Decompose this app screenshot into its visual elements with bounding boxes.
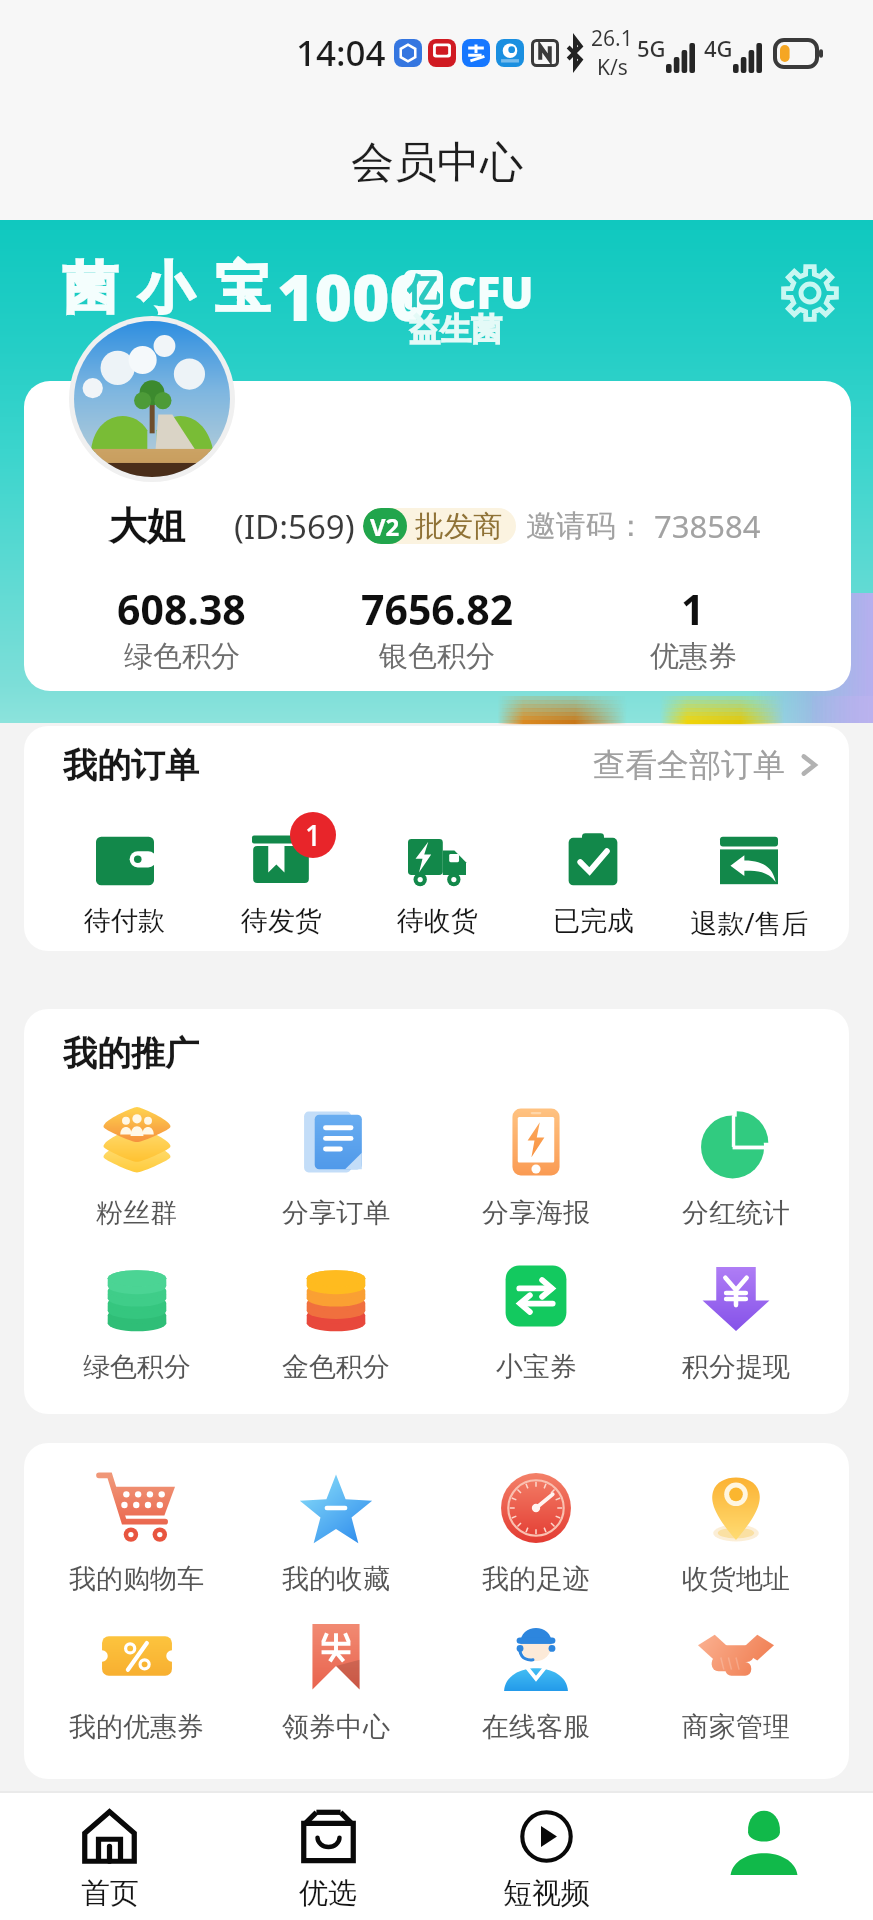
staticText: 领券中心: [282, 1710, 390, 1744]
staticText: 我的推广: [63, 1032, 199, 1075]
staticText: 在线客服: [482, 1710, 590, 1744]
staticText: 绿色积分: [124, 638, 240, 675]
button[interactable]: 我的: [655, 1793, 873, 1920]
staticText: CFU: [448, 262, 534, 322]
button[interactable]: 7656.82: [309, 581, 565, 675]
button[interactable]: 查看全部订单: [593, 741, 821, 789]
staticText: 益生菌: [409, 310, 502, 349]
staticText: 我的收藏: [282, 1562, 390, 1596]
staticText: 我的优惠券: [69, 1710, 204, 1744]
staticText: 商家管理: [682, 1710, 790, 1744]
button[interactable]: 收货地址: [636, 1470, 836, 1596]
button[interactable]: 1: [203, 832, 359, 938]
staticText: 优惠券: [650, 638, 737, 675]
staticText: 5G: [637, 33, 666, 63]
staticText: 金色积分: [282, 1350, 390, 1384]
button[interactable]: 1: [565, 581, 821, 675]
button[interactable]: 粉丝群: [37, 1104, 236, 1230]
staticText: (ID:569): [234, 504, 355, 549]
staticText: 我的购物车: [69, 1562, 204, 1596]
staticText: 待付款: [84, 904, 165, 938]
button[interactable]: 待收货: [359, 832, 515, 938]
staticText: 26.1: [591, 24, 633, 53]
staticText: 7656.82: [361, 581, 514, 637]
button[interactable]: 我的优惠券: [37, 1618, 236, 1744]
staticText: 608.38: [117, 581, 246, 637]
button[interactable]: 已完成: [515, 832, 671, 938]
button[interactable]: 分红统计: [636, 1104, 836, 1230]
button[interactable]: 待付款: [46, 832, 203, 938]
button[interactable]: 分享海报: [436, 1104, 636, 1230]
button[interactable]: 分享订单: [236, 1104, 436, 1230]
staticText: 1: [681, 581, 705, 637]
staticText: 分享订单: [282, 1196, 390, 1230]
button[interactable]: 我的足迹: [436, 1470, 636, 1596]
button[interactable]: 退款/售后: [671, 832, 827, 941]
button[interactable]: Avatar: [74, 321, 230, 477]
staticText: 1000: [277, 253, 428, 340]
button[interactable]: 金色积分: [236, 1258, 436, 1384]
staticText: 我的足迹: [482, 1562, 590, 1596]
staticText: 小宝券: [496, 1350, 577, 1384]
staticText: 粉丝群: [96, 1196, 177, 1230]
staticText: 批发商: [415, 508, 502, 544]
staticText: K/s: [597, 53, 628, 82]
button[interactable]: 608.38: [54, 581, 309, 675]
staticText: 积分提现: [682, 1350, 790, 1384]
staticText: 邀请码：: [526, 507, 646, 545]
staticText: 收货地址: [682, 1562, 790, 1596]
button[interactable]: 首页: [0, 1793, 219, 1920]
button[interactable]: 小宝券: [436, 1258, 636, 1384]
staticText: 待发货: [241, 904, 322, 938]
button[interactable]: 积分提现: [636, 1258, 836, 1384]
button[interactable]: 在线客服: [436, 1618, 636, 1744]
staticText: 优选: [299, 1875, 357, 1912]
staticText: 4G: [704, 33, 733, 63]
button[interactable]: 优选: [219, 1793, 437, 1920]
staticText: 亿: [407, 270, 440, 310]
staticText: 14:04: [296, 29, 386, 77]
button[interactable]: 绿色积分: [37, 1258, 236, 1384]
staticText: 查看全部订单: [593, 745, 785, 785]
staticText: 我的订单: [63, 744, 199, 787]
button[interactable]: 商家管理: [636, 1618, 836, 1744]
staticText: 738584: [654, 505, 761, 547]
button[interactable]: 我的购物车: [37, 1470, 236, 1596]
staticText: 绿色积分: [83, 1350, 191, 1384]
button[interactable]: 短视频: [437, 1793, 655, 1920]
staticText: 退款/售后: [690, 904, 809, 941]
button[interactable]: 我的收藏: [236, 1470, 436, 1596]
staticText: 待收货: [397, 904, 478, 938]
button[interactable]: 领券中心: [236, 1618, 436, 1744]
staticText: 首页: [81, 1875, 139, 1912]
staticText: 菌小宝: [52, 254, 280, 323]
staticText: 1: [305, 816, 322, 854]
staticText: 分红统计: [682, 1196, 790, 1230]
button[interactable]: Settings: [776, 259, 844, 327]
staticText: 会员中心: [351, 136, 523, 190]
staticText: 大姐: [109, 502, 185, 550]
staticText: V2: [370, 510, 400, 543]
staticText: 短视频: [503, 1875, 590, 1912]
staticText: 已完成: [553, 904, 634, 938]
staticText: 分享海报: [482, 1196, 590, 1230]
staticText: 银色积分: [379, 638, 495, 675]
